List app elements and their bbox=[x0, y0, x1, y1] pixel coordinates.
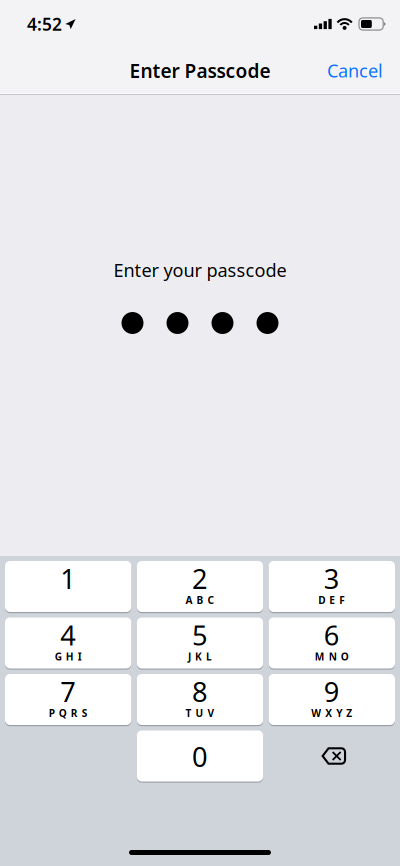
button[interactable]: 1 bbox=[5, 561, 131, 612]
staticText: 6 bbox=[324, 616, 340, 653]
button[interactable]: 0 bbox=[137, 730, 263, 781]
staticText: P Q R S bbox=[49, 706, 88, 720]
staticText bbox=[198, 771, 201, 785]
staticText: Enter your passcode bbox=[113, 258, 286, 282]
staticText: 4 bbox=[60, 616, 76, 653]
staticText: T U V bbox=[185, 706, 214, 720]
button[interactable]: Delete bbox=[269, 730, 395, 781]
button[interactable]: 4 bbox=[5, 617, 131, 668]
button[interactable]: 6 bbox=[269, 617, 395, 668]
staticText: G H I bbox=[55, 650, 82, 663]
staticText: 3 bbox=[324, 560, 340, 597]
button[interactable]: 3 bbox=[269, 561, 395, 612]
staticText: 8 bbox=[192, 673, 208, 710]
staticText: 1 bbox=[60, 560, 76, 597]
button[interactable]: 9 bbox=[269, 674, 395, 725]
staticText: 5 bbox=[192, 616, 208, 653]
button[interactable]: 7 bbox=[5, 674, 131, 725]
staticText: W X Y Z bbox=[311, 706, 352, 720]
staticText: 9 bbox=[324, 673, 340, 710]
button[interactable]: 5 bbox=[137, 617, 263, 668]
staticText: 0 bbox=[192, 738, 208, 775]
staticText: J K L bbox=[188, 650, 212, 663]
button[interactable]: Cancel bbox=[310, 46, 400, 95]
staticText: M N O bbox=[315, 650, 349, 663]
staticText: 4:52 bbox=[27, 12, 62, 36]
button[interactable]: 8 bbox=[137, 674, 263, 725]
staticText: 2 bbox=[192, 560, 208, 597]
staticText: Enter Passcode bbox=[129, 57, 270, 83]
staticText: A B C bbox=[185, 593, 214, 607]
staticText: 7 bbox=[60, 673, 76, 710]
staticText: Cancel bbox=[327, 58, 383, 83]
staticText: D E F bbox=[318, 593, 345, 607]
button[interactable]: 2 bbox=[137, 561, 263, 612]
